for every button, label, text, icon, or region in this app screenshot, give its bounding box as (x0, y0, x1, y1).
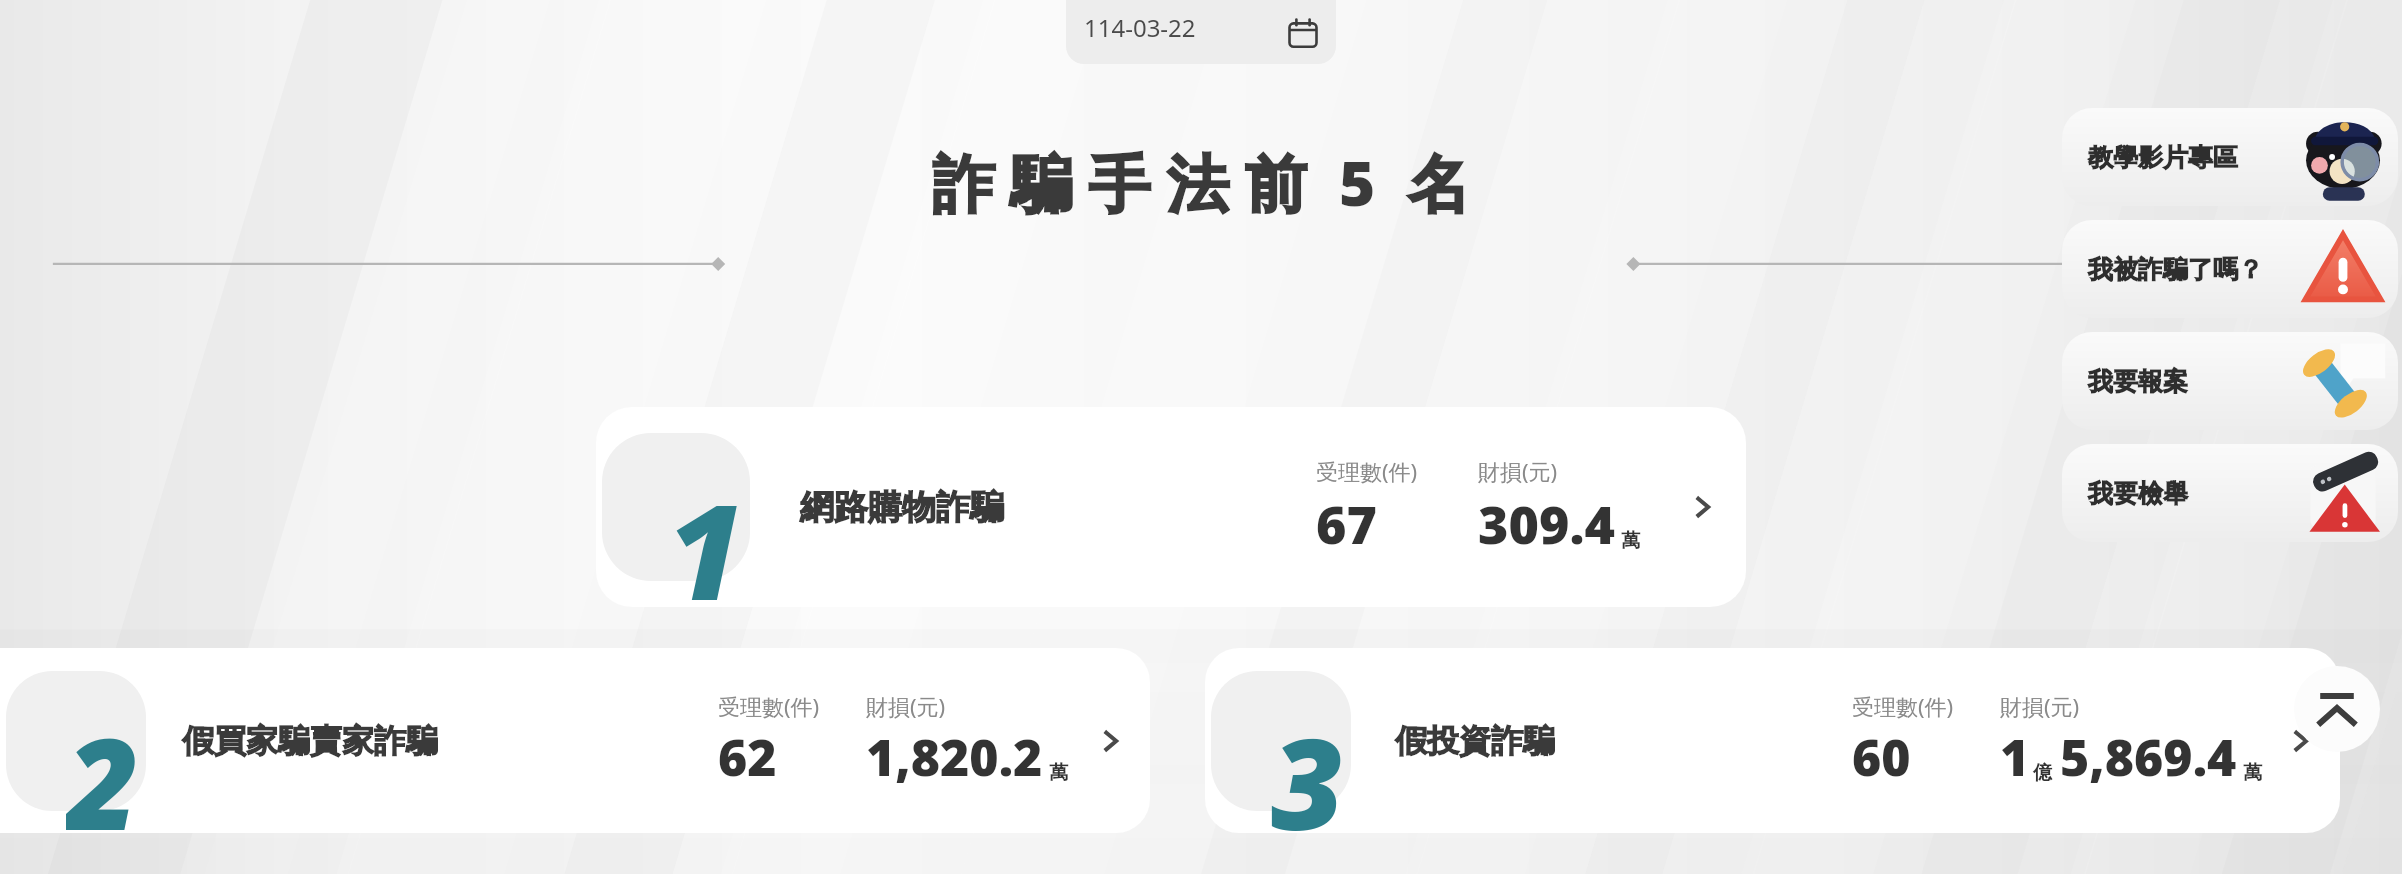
staticText: 財損(元) (2000, 691, 2080, 721)
staticText: 財損(元) (1478, 456, 1558, 486)
staticText: 60 (1852, 723, 1911, 791)
staticText: 62 (718, 723, 777, 791)
staticText: 萬 (1621, 529, 1640, 553)
button[interactable]: 2 (0, 648, 1150, 833)
staticText: 財損(元) (866, 691, 946, 721)
staticText: 67 (1316, 488, 1377, 559)
button[interactable]: 我要報案 (2062, 332, 2398, 430)
staticText: 受理數(件) (718, 691, 820, 721)
staticText: 受理數(件) (1316, 456, 1418, 486)
staticText: 114-03-22 (1084, 11, 1196, 44)
button[interactable]: 我被詐騙了嗎？ (2062, 220, 2398, 318)
staticText: 3 (1271, 695, 1345, 833)
staticText: 網路購物詐騙 (800, 486, 1004, 529)
staticText: 萬 (2243, 761, 2262, 785)
staticText: 我被詐騙了嗎？ (2088, 254, 2263, 285)
staticText: 萬 (1049, 761, 1068, 785)
button[interactable]: 114-03-22 (1066, 0, 1336, 64)
staticText: 詐 騙 手 法 前 5 名 (932, 140, 1470, 225)
staticText: 309.4 (1478, 488, 1615, 559)
staticText: 教學影片專區 (2088, 142, 2238, 173)
staticText: 5,869.4 (2060, 723, 2237, 791)
button[interactable]: 我要檢舉 (2062, 444, 2398, 542)
button[interactable]: 教學影片專區 (2062, 108, 2398, 206)
staticText: 我要檢舉 (2088, 478, 2188, 509)
staticText: 億 (2033, 761, 2052, 785)
staticText: 2 (66, 695, 140, 833)
staticText: 我要報案 (2088, 366, 2188, 397)
staticText: 1,820.2 (866, 723, 1043, 791)
staticText: 1 (667, 459, 744, 607)
staticText: 假投資詐騙 (1395, 721, 1555, 761)
staticText: 假買家騙賣家詐騙 (182, 721, 438, 761)
button[interactable]: Scroll to top (2294, 666, 2380, 752)
button[interactable]: 3 (1205, 648, 2340, 833)
button[interactable]: 1 (596, 407, 1746, 607)
staticText: 1 (2000, 723, 2030, 791)
staticText: 受理數(件) (1852, 691, 1954, 721)
